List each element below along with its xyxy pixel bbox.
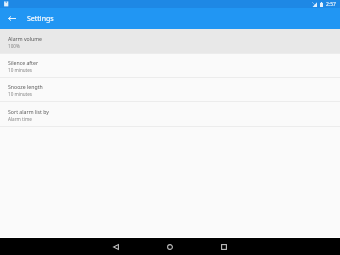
button[interactable]: Sort alarm list by (0, 101, 340, 126)
staticText: 2:57 (326, 1, 336, 8)
staticText: Alarm time (8, 116, 32, 122)
staticText: Settings (27, 14, 54, 24)
button[interactable]: Silence after (0, 53, 340, 77)
button[interactable]: Alarm volume (0, 29, 340, 53)
button[interactable]: Back (102, 238, 130, 255)
staticText: 10 minutes (8, 91, 33, 97)
button[interactable]: Recent apps (210, 238, 238, 255)
staticText: Snooze length (8, 83, 43, 90)
staticText: Alarm volume (8, 35, 42, 42)
button[interactable]: Navigate up (0, 8, 24, 29)
button[interactable]: Snooze length (0, 77, 340, 101)
staticText: 10 minutes (8, 67, 33, 73)
staticText: Sort alarm list by (8, 108, 49, 115)
staticText: 100% (8, 43, 20, 49)
button[interactable]: Home (156, 238, 184, 255)
staticText: Silence after (8, 59, 39, 66)
